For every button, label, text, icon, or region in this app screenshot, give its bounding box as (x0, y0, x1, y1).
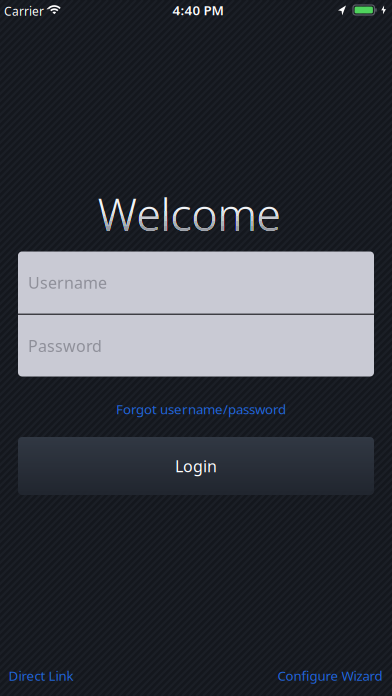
staticText: Password (28, 335, 102, 356)
staticText: 4:40 PM (172, 1, 223, 19)
button[interactable]: Login (18, 437, 374, 495)
button[interactable]: Password (18, 315, 374, 376)
staticText: Welcome (97, 185, 280, 243)
staticText: Direct Link (8, 667, 73, 684)
staticText: Welcome (97, 185, 280, 243)
staticText: Carrier (4, 3, 44, 19)
button[interactable]: Configure Wizard (277, 667, 382, 684)
staticText: Forgot username/password (116, 400, 286, 418)
staticText: Welcome (97, 185, 280, 243)
staticText: Welcome (97, 185, 280, 243)
staticText: Configure Wizard (277, 667, 382, 684)
staticText: Welcome (97, 185, 280, 243)
staticText: Username (28, 272, 107, 293)
staticText: Login (175, 455, 217, 477)
button[interactable]: Username (18, 251, 374, 313)
button[interactable]: Forgot username/password (116, 400, 286, 418)
button[interactable]: Direct Link (8, 667, 73, 684)
